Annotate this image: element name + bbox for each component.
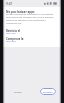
staticText: Reinicia el bbox=[6, 29, 21, 33]
staticText: 9:41 bbox=[6, 2, 13, 6]
staticText: Comprova la bbox=[6, 37, 24, 41]
staticText: No puc baixar apps bbox=[6, 10, 35, 14]
staticText: Més info bbox=[6, 39, 16, 42]
button[interactable]: Reinicia el bbox=[3, 29, 61, 36]
button[interactable]: Finalitza bbox=[40, 88, 56, 95]
staticText: Finalitza bbox=[43, 90, 53, 93]
button[interactable]: Enrere bbox=[12, 88, 24, 95]
button[interactable]: Comprova la bbox=[3, 37, 61, 44]
staticText: Si tens problemes per baixar o actualitz… bbox=[6, 12, 56, 24]
staticText: Enrere bbox=[14, 90, 22, 93]
staticText: Més info bbox=[6, 31, 16, 34]
